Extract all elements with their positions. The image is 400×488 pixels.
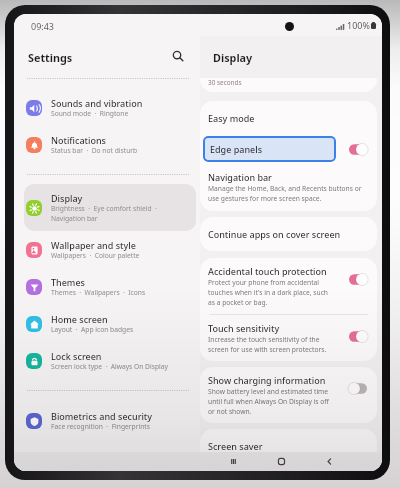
staticText: Display [213, 50, 253, 65]
staticText: Easy mode [208, 112, 255, 124]
button[interactable]: Home [268, 452, 294, 471]
button[interactable]: Switch off [349, 382, 367, 395]
staticText: Manage the Home, Back, and Recents butto… [208, 184, 362, 202]
staticText: Edge panels [210, 143, 263, 155]
button[interactable]: Notifications [24, 126, 196, 163]
staticText: Themes · Wallpapers · Icons [51, 288, 146, 297]
button[interactable]: Navigation bar [200, 163, 377, 211]
button[interactable]: 30 seconds [200, 78, 377, 92]
button[interactable]: Wallpaper and style [24, 231, 196, 268]
staticText: Screen lock type · Always On Display [51, 362, 168, 371]
button[interactable]: Edge panels [203, 136, 336, 162]
staticText: Themes [51, 276, 85, 288]
button[interactable]: Back [316, 452, 342, 471]
staticText: Layout · App icon badges [51, 325, 134, 334]
staticText: Increase the touch sensitivity of the sc… [208, 335, 327, 353]
button[interactable]: Switch on [349, 143, 367, 156]
button[interactable]: Screen saver [200, 429, 377, 463]
button[interactable]: Lock screen [24, 342, 196, 379]
staticText: Home screen [51, 313, 108, 325]
button[interactable]: Themes [24, 268, 196, 305]
staticText: Notifications [51, 134, 106, 146]
button[interactable]: Easy mode [200, 101, 377, 135]
staticText: Brightness · Eye comfort shield · Naviga… [51, 204, 157, 223]
staticText: Protect your phone from accidental touch… [208, 278, 329, 306]
staticText: Biometrics and security [51, 410, 153, 422]
staticText: Display [51, 192, 83, 204]
staticText: 30 seconds [208, 78, 242, 87]
button[interactable]: Switch on [349, 273, 367, 286]
staticText: Sounds and vibration [51, 97, 143, 109]
staticText: Face recognition · Fingerprints [51, 422, 150, 431]
button[interactable]: Biometrics and security [24, 402, 196, 439]
staticText: Navigation bar [208, 171, 272, 183]
button[interactable]: Home screen [24, 305, 196, 342]
button[interactable]: Display [24, 184, 196, 231]
staticText: Touch sensitivity [208, 322, 280, 334]
staticText: Show charging information [208, 374, 326, 386]
staticText: Wallpaper and style [51, 239, 136, 251]
button[interactable]: Show charging information [200, 367, 377, 423]
button[interactable]: Switch on [349, 330, 367, 343]
staticText: Status bar · Do not disturb [51, 146, 138, 155]
staticText: Wallpapers · Colour palette [51, 251, 140, 260]
button[interactable]: Sounds and vibration [24, 89, 196, 126]
button[interactable]: Search [169, 47, 187, 65]
staticText: Sound mode · Ringtone [51, 109, 129, 118]
staticText: Settings [28, 50, 73, 65]
staticText: Show battery level and estimated time un… [208, 387, 329, 415]
button[interactable]: Accidental touch protection [200, 258, 377, 314]
staticText: Accidental touch protection [208, 265, 327, 277]
button[interactable]: Touch sensitivity [200, 315, 377, 361]
staticText: 09:43 [31, 20, 55, 32]
button[interactable]: Continue apps on cover screen [200, 217, 377, 251]
staticText: 100% [347, 19, 370, 31]
button[interactable]: Recents [220, 452, 246, 471]
staticText: Lock screen [51, 350, 102, 362]
staticText: Screen saver [208, 440, 263, 452]
staticText: Continue apps on cover screen [208, 228, 341, 240]
